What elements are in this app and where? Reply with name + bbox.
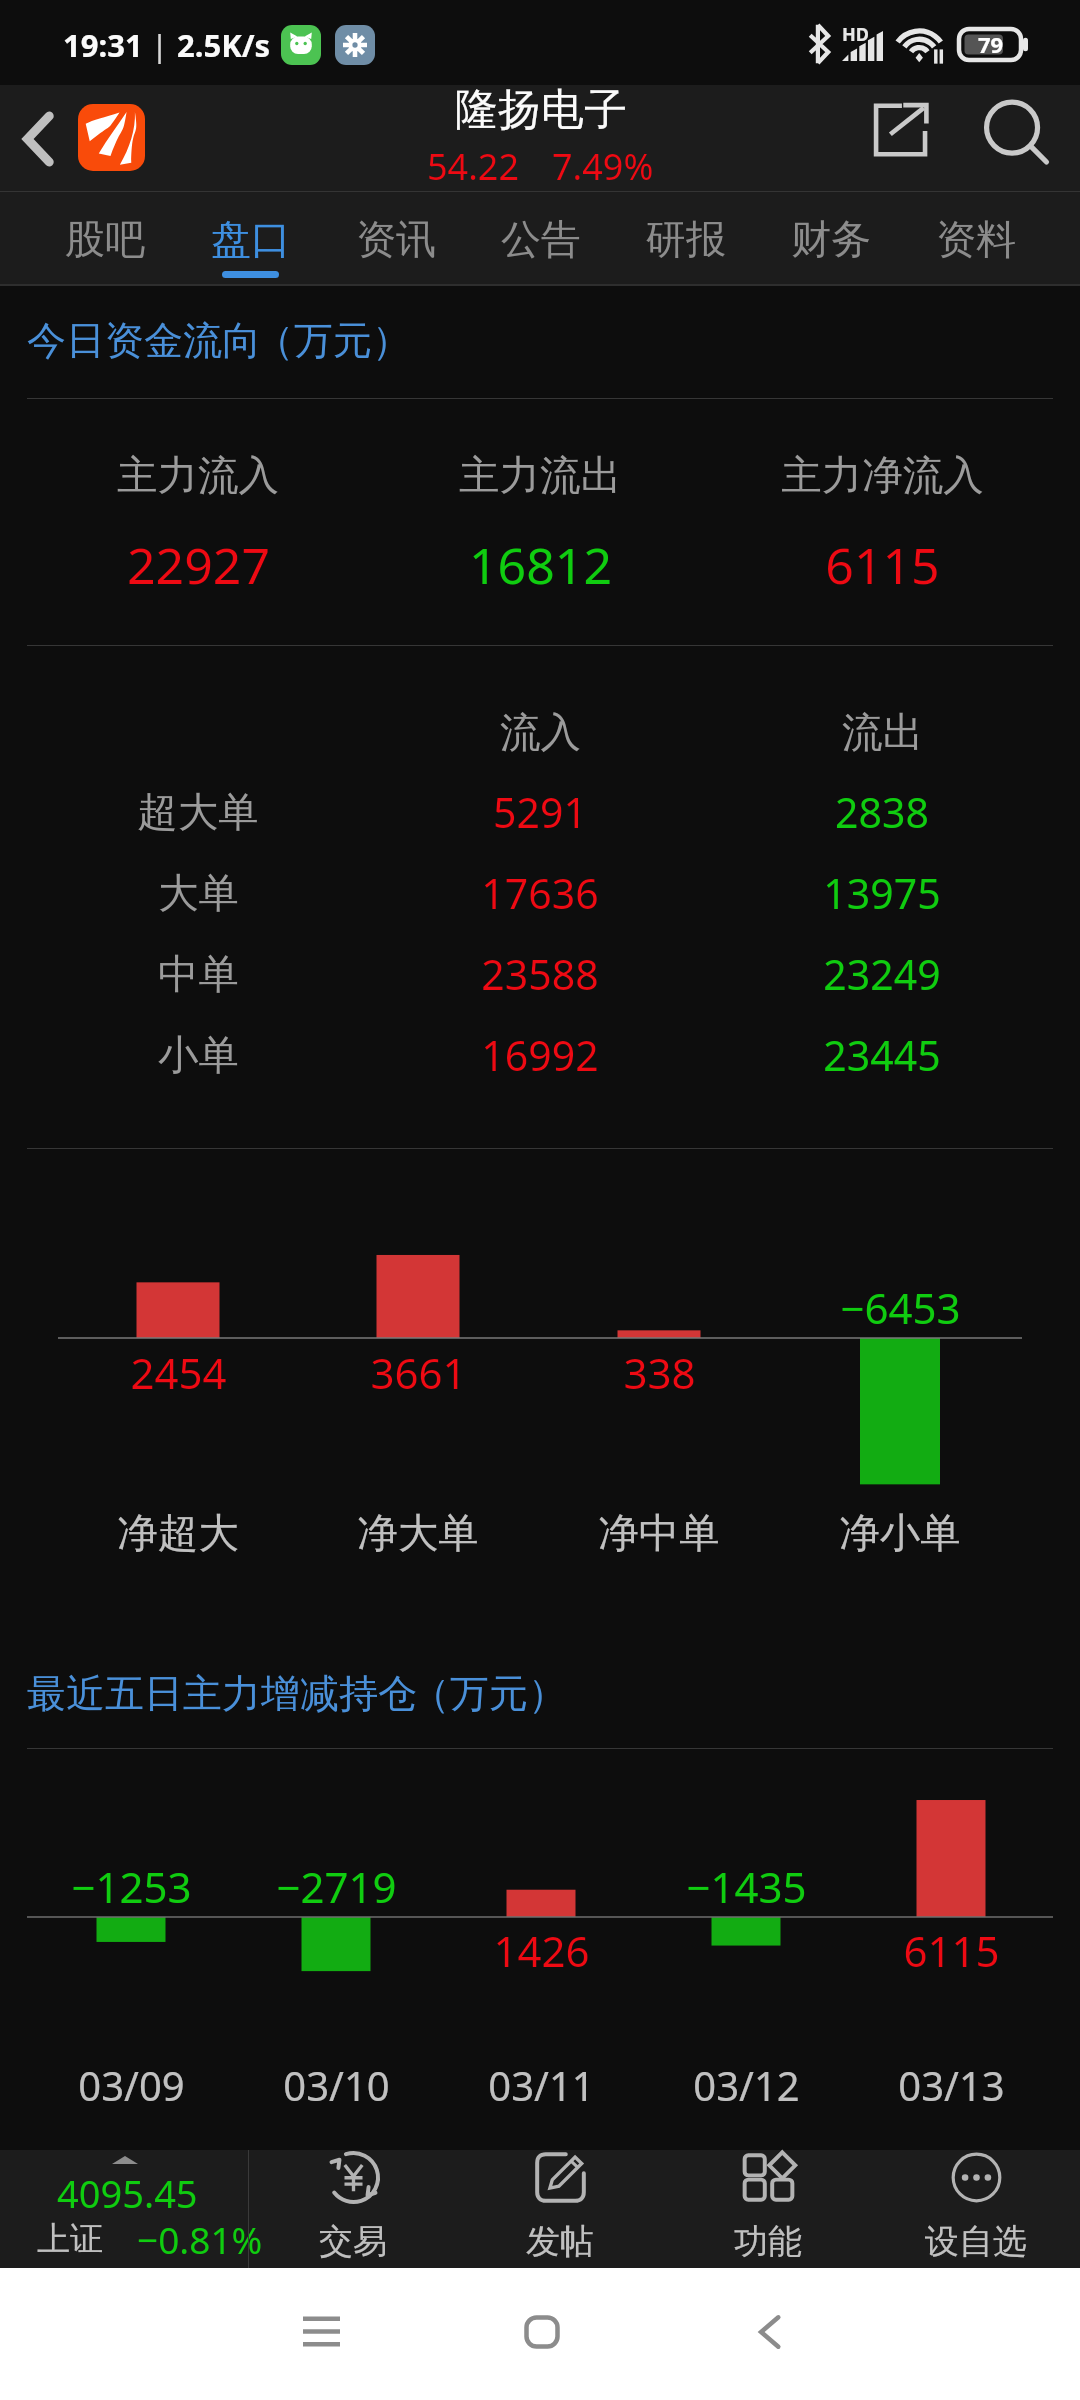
button[interactable]: 设自选	[872, 2150, 1080, 2272]
staticText: 23445	[823, 1027, 941, 1083]
staticText: 338	[623, 1344, 696, 1401]
staticText: 23588	[481, 946, 599, 1002]
staticText: 主力流出	[459, 450, 621, 501]
staticText: 超大单	[137, 787, 259, 838]
staticText: 今日资金流向	[27, 316, 261, 365]
staticText: 设自选	[925, 2220, 1027, 2263]
staticText: 小单	[158, 1030, 239, 1081]
button[interactable]: 资料	[903, 192, 1048, 286]
staticText: 3661	[370, 1344, 467, 1401]
button[interactable]: 研报	[613, 192, 758, 286]
staticText: 主力流入	[117, 450, 279, 501]
staticText: 6115	[825, 531, 940, 599]
staticText: 净大单	[357, 1508, 479, 1559]
staticText: −1435	[686, 1858, 807, 1915]
staticText: −6453	[840, 1279, 961, 1336]
button[interactable]: Home	[432, 2268, 652, 2400]
staticText: |	[143, 24, 177, 66]
button[interactable]: 盘口	[178, 192, 323, 286]
staticText: 财务	[791, 214, 871, 264]
staticText: 盘口	[211, 214, 291, 264]
staticText: 研报	[646, 214, 726, 264]
staticText: 03/13	[898, 2058, 1005, 2112]
staticText: 隆扬电子	[455, 83, 627, 137]
button[interactable]: 公告	[468, 192, 613, 286]
button[interactable]: 4095.45	[0, 2150, 248, 2272]
staticText: 5291	[493, 784, 587, 840]
staticText: （万元）	[411, 1669, 567, 1718]
staticText: 功能	[734, 2220, 802, 2263]
staticText: 净中单	[598, 1508, 720, 1559]
staticText: 03/10	[283, 2058, 390, 2112]
staticText: 7.49%	[552, 142, 654, 190]
staticText: 1426	[493, 1922, 590, 1979]
staticText: 6115	[903, 1922, 1000, 1979]
staticText: 资讯	[356, 214, 436, 264]
button[interactable]: 股吧	[32, 192, 178, 286]
button[interactable]: 财务	[758, 192, 903, 286]
button[interactable]: Back	[0, 85, 78, 192]
staticText: −0.81%	[137, 2214, 263, 2264]
staticText: 79	[978, 29, 1004, 59]
staticText: 中单	[158, 949, 239, 1000]
button[interactable]: 功能	[664, 2150, 872, 2272]
staticText: 2454	[130, 1344, 227, 1401]
staticText: 16812	[469, 531, 612, 599]
staticText: 03/11	[488, 2058, 595, 2112]
button[interactable]: Search	[972, 85, 1060, 192]
staticText: 19:31	[63, 24, 143, 66]
staticText: 4095.45	[57, 2167, 198, 2219]
staticText: 主力净流入	[781, 450, 984, 501]
staticText: 交易	[319, 2220, 387, 2263]
staticText: 03/09	[78, 2058, 185, 2112]
staticText: 17636	[481, 865, 599, 921]
button[interactable]: 发帖	[456, 2150, 664, 2272]
staticText: 2.5K/s	[177, 24, 271, 66]
staticText: 流出	[842, 707, 923, 758]
button[interactable]: 交易	[249, 2150, 456, 2272]
staticText: −1253	[71, 1858, 192, 1915]
staticText: 公告	[501, 214, 581, 264]
staticText: 16992	[481, 1027, 599, 1083]
staticText: 净超大	[117, 1508, 239, 1559]
staticText: 资料	[936, 214, 1016, 264]
staticText: 13975	[823, 865, 941, 921]
staticText: HD	[842, 22, 869, 47]
staticText: 大单	[158, 868, 239, 919]
staticText: 股吧	[65, 214, 145, 264]
staticText: 2838	[835, 784, 929, 840]
button[interactable]: Share	[858, 85, 946, 192]
staticText: 03/12	[693, 2058, 800, 2112]
staticText: 上证	[37, 2218, 103, 2260]
staticText: 净小单	[839, 1508, 961, 1559]
staticText: −2719	[276, 1858, 397, 1915]
staticText: 流入	[500, 707, 581, 758]
staticText: 最近五日主力增减持仓	[27, 1669, 417, 1718]
staticText: （万元）	[255, 316, 411, 365]
button[interactable]: 资讯	[323, 192, 468, 286]
button[interactable]: Eastmoney home	[78, 104, 145, 171]
staticText: 22927	[127, 531, 270, 599]
staticText: 54.22	[427, 142, 520, 190]
staticText: 23249	[823, 946, 941, 1002]
staticText: 发帖	[526, 2220, 594, 2263]
button[interactable]: Back	[659, 2268, 879, 2400]
button[interactable]: Recents	[211, 2268, 431, 2400]
